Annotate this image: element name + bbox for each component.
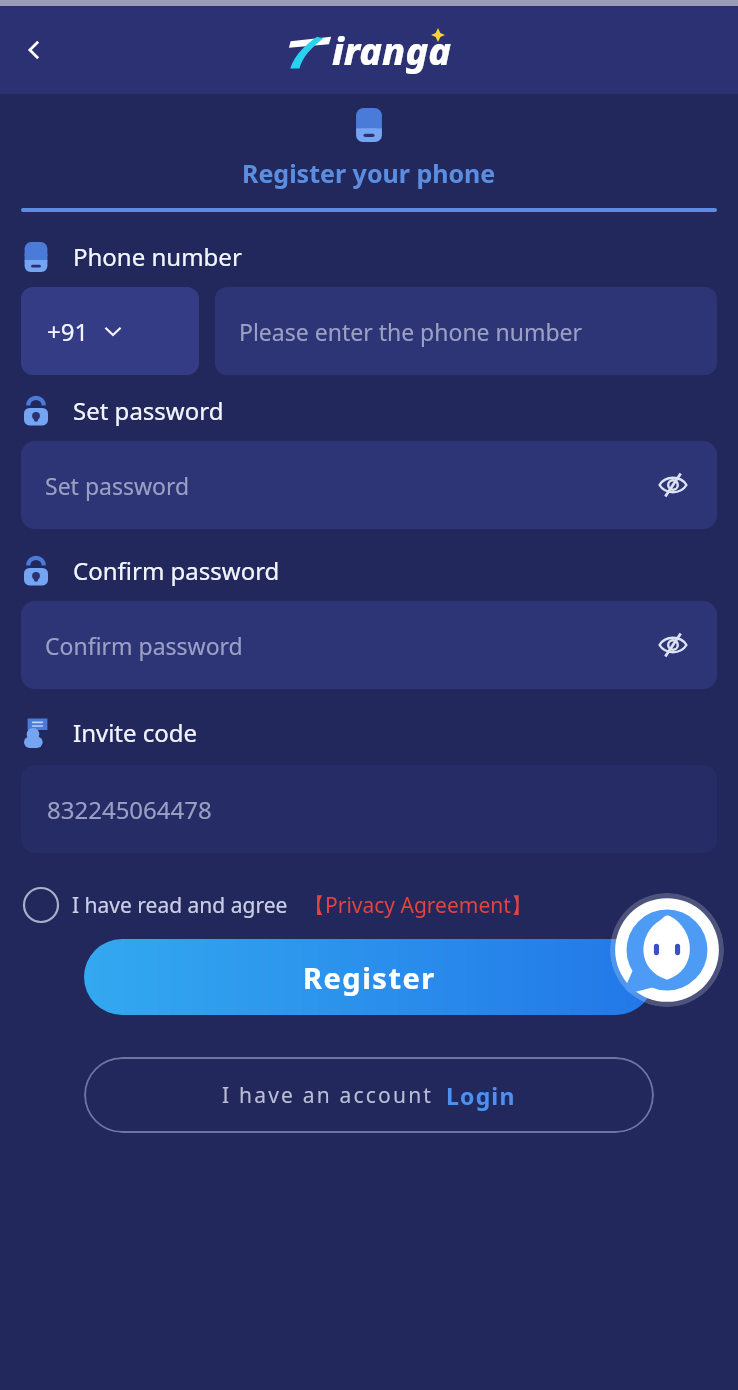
staticText: I have an account — [222, 1081, 434, 1110]
staticText: I have read and agree — [72, 891, 288, 920]
staticText: Register — [303, 958, 436, 997]
staticText: 832245064478 — [47, 793, 212, 826]
staticText: Confirm password — [73, 554, 280, 587]
staticText: Invite code — [73, 716, 198, 749]
button[interactable]: Back — [10, 26, 58, 74]
staticText: 【Privacy Agreement】 — [304, 891, 532, 920]
button[interactable]: Show password — [651, 463, 695, 507]
button[interactable]: Register — [84, 939, 654, 1015]
staticText: iranga — [332, 24, 451, 76]
staticText: Please enter the phone number — [239, 316, 583, 347]
button[interactable]: I have an account — [84, 1057, 654, 1133]
button[interactable]: +91 — [21, 287, 199, 375]
staticText: Phone number — [73, 240, 242, 273]
staticText: Login — [446, 1080, 516, 1111]
button[interactable]: 832245064478 — [21, 765, 717, 853]
staticText: +91 — [47, 315, 89, 348]
button[interactable]: Set password — [21, 441, 717, 529]
staticText: Set password — [73, 394, 224, 427]
button[interactable]: Confirm password — [21, 601, 717, 689]
staticText: Confirm password — [45, 630, 651, 661]
staticText: Set password — [45, 470, 651, 501]
button[interactable]: Agree to privacy agreement — [21, 885, 61, 925]
button[interactable]: 【Privacy Agreement】 — [304, 891, 532, 920]
button[interactable]: Customer service chat — [610, 893, 724, 1007]
staticText: Register your phone — [242, 156, 496, 190]
button[interactable]: Show password — [651, 623, 695, 667]
button[interactable]: Please enter the phone number — [215, 287, 717, 375]
